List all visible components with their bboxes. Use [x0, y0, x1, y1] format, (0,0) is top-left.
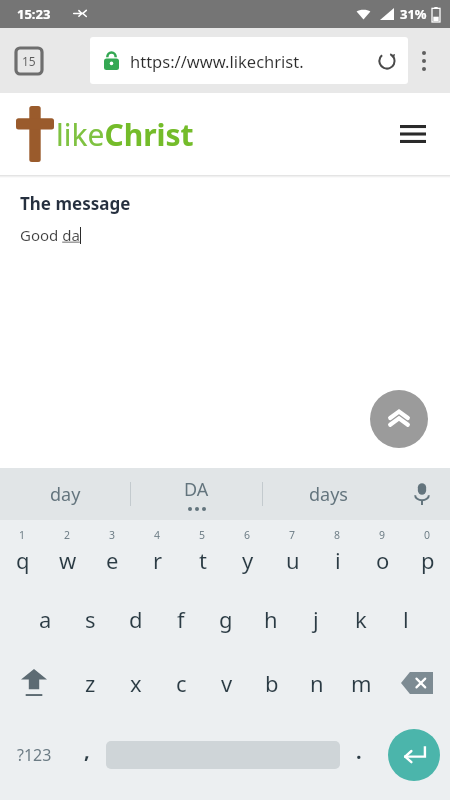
button[interactable]: 3 [90, 523, 135, 587]
button[interactable]: s [68, 587, 113, 651]
staticText: o [376, 545, 390, 575]
staticText: 15 [22, 53, 36, 69]
staticText: n [310, 668, 324, 698]
staticText: 1 [19, 528, 26, 542]
button[interactable]: m [339, 651, 384, 715]
staticText: z [85, 668, 96, 698]
staticText: day [50, 482, 81, 507]
button[interactable]: day [0, 468, 130, 520]
button[interactable]: Voice input [394, 468, 450, 520]
staticText: m [351, 668, 372, 698]
staticText: u [286, 545, 300, 575]
staticText: f [177, 604, 185, 634]
staticText: i [335, 545, 341, 575]
staticText: 3 [109, 528, 116, 542]
button[interactable]: Scroll to top [370, 390, 428, 448]
button[interactable]: k [338, 587, 383, 651]
staticText: l [403, 604, 409, 634]
staticText: p [421, 545, 435, 575]
button[interactable]: c [159, 651, 204, 715]
button[interactable]: https://www.likechrist. [90, 37, 408, 84]
button[interactable]: days [263, 468, 394, 520]
staticText: r [153, 545, 163, 575]
staticText: g [219, 604, 233, 634]
staticText: q [16, 545, 30, 575]
staticText: j [313, 604, 319, 634]
button[interactable]: f [158, 587, 203, 651]
button[interactable]: likeChrist [16, 106, 194, 162]
button[interactable]: b [249, 651, 294, 715]
staticText: 6 [244, 528, 251, 542]
button[interactable]: 9 [360, 523, 405, 587]
button[interactable]: . [340, 715, 378, 794]
button[interactable]: 7 [270, 523, 315, 587]
button[interactable]: x [113, 651, 159, 715]
staticText: . [356, 738, 362, 765]
button[interactable]: l [383, 587, 428, 651]
button[interactable]: a [22, 587, 68, 651]
staticText: d [129, 604, 143, 634]
staticText: b [265, 668, 279, 698]
button[interactable]: v [204, 651, 249, 715]
button[interactable]: 5 [180, 523, 225, 587]
button[interactable]: More options [406, 43, 442, 79]
staticText: https://www.likechrist. [130, 50, 370, 72]
button[interactable]: Enter [388, 729, 440, 781]
staticText: k [355, 604, 367, 634]
staticText: ?123 [17, 744, 52, 766]
staticText: 7 [289, 528, 296, 542]
button[interactable]: n [294, 651, 339, 715]
staticText: t [199, 545, 207, 575]
button[interactable]: 0 [405, 523, 450, 587]
button[interactable]: 8 [315, 523, 360, 587]
staticText: 31% [400, 5, 427, 23]
button[interactable]: h [248, 587, 293, 651]
staticText: 0 [424, 528, 431, 542]
staticText: e [106, 545, 119, 575]
button[interactable]: Space [106, 715, 340, 794]
button[interactable]: z [67, 651, 113, 715]
staticText: a [39, 604, 52, 634]
button[interactable]: Backspace [384, 651, 450, 715]
staticText: x [130, 668, 142, 698]
staticText: 8 [334, 528, 341, 542]
button[interactable]: 4 [135, 523, 180, 587]
button[interactable]: Reload [370, 44, 404, 78]
staticText: y [242, 545, 254, 575]
button[interactable]: Tabs, 15 open [16, 48, 42, 74]
staticText: Good da [20, 225, 80, 245]
staticText: h [264, 604, 278, 634]
button[interactable]: g [203, 587, 248, 651]
staticText: s [85, 604, 96, 634]
staticText: likeChrist [56, 114, 194, 155]
button[interactable]: 2 [45, 523, 90, 587]
button[interactable]: ?123 [0, 715, 68, 794]
staticText: v [221, 668, 233, 698]
button[interactable]: Menu [392, 113, 434, 155]
staticText: days [309, 482, 348, 507]
staticText: 9 [379, 528, 386, 542]
button[interactable]: d [113, 587, 158, 651]
staticText: DA [184, 477, 209, 502]
button[interactable]: Shift [0, 651, 67, 715]
button[interactable]: j [293, 587, 338, 651]
button[interactable]: 1 [0, 523, 45, 587]
button[interactable]: DA [131, 468, 262, 520]
staticText: 15:23 [17, 5, 51, 23]
button[interactable]: 6 [225, 523, 270, 587]
staticText: 5 [199, 528, 206, 542]
staticText: w [59, 545, 77, 575]
staticText: The message [20, 192, 131, 215]
button[interactable]: , [68, 715, 106, 794]
staticText: c [176, 668, 187, 698]
staticText: 2 [64, 528, 71, 542]
staticText: , [84, 737, 90, 764]
staticText: 4 [154, 528, 161, 542]
